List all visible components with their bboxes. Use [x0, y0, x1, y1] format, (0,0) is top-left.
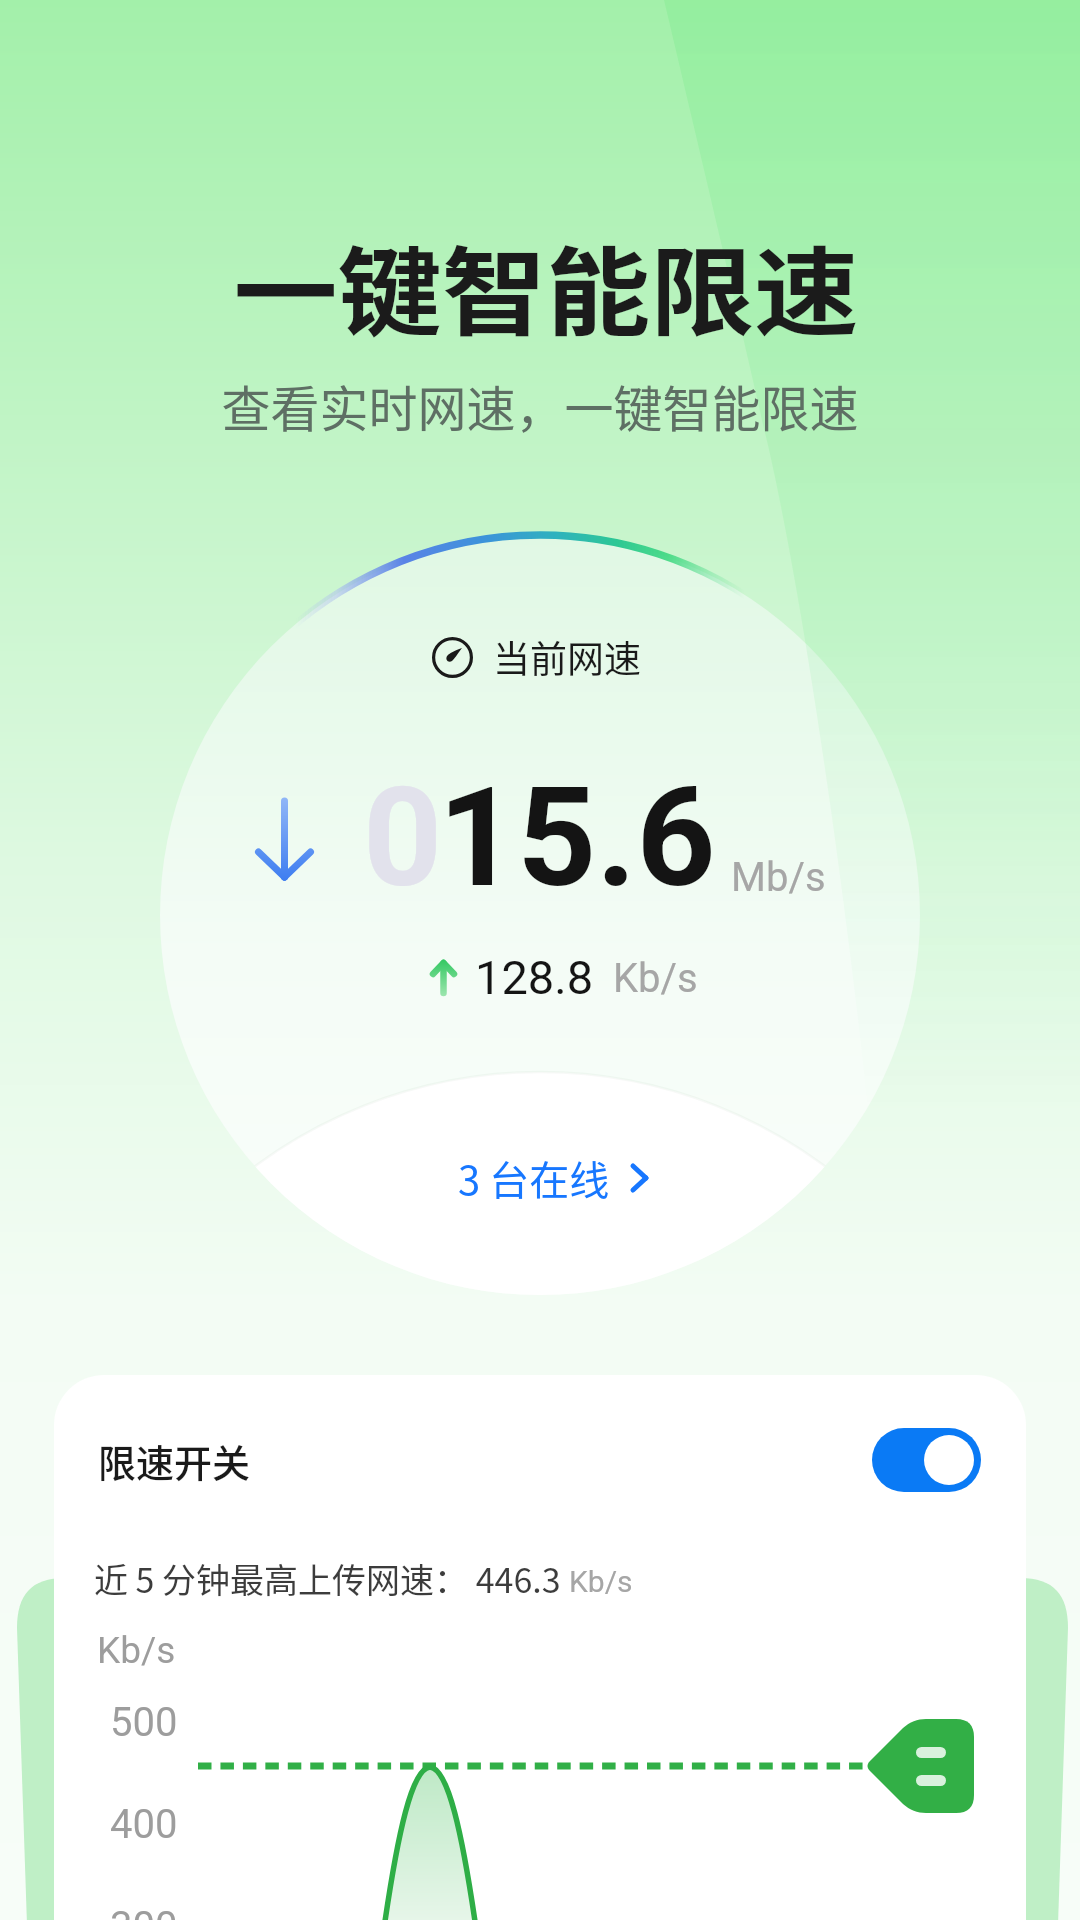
- staticText: 查看实时网速，一键智能限速: [0, 370, 1080, 441]
- staticText: 一键智能限速: [0, 216, 1080, 355]
- staticText: 0: [363, 757, 443, 919]
- button[interactable]: 3 台在线: [458, 1149, 652, 1207]
- staticText: Kb/s: [97, 1629, 176, 1672]
- staticText: Kb/s: [569, 1564, 633, 1599]
- staticText: 500: [110, 1699, 178, 1746]
- button[interactable]: 调整限速: [865, 1719, 975, 1814]
- staticText: 400: [110, 1801, 178, 1848]
- staticText: Mb/s: [731, 854, 826, 901]
- staticText: 128.8: [475, 950, 594, 1005]
- staticText: 15.6: [438, 757, 716, 919]
- staticText: 3 台在线: [458, 1149, 610, 1207]
- staticText: 限速开关: [98, 1433, 251, 1488]
- button[interactable]: 限速开关: [872, 1428, 981, 1492]
- staticText: 近 5 分钟最高上传网速： 446.3: [94, 1554, 569, 1603]
- staticText: 当前网速: [493, 630, 641, 684]
- button[interactable]: 限速开关: [98, 1375, 981, 1545]
- button[interactable]: 当前网速: [432, 630, 641, 684]
- staticText: 300: [110, 1903, 178, 1920]
- staticText: Kb/s: [613, 955, 698, 1002]
- other: 当前网速: [432, 637, 473, 678]
